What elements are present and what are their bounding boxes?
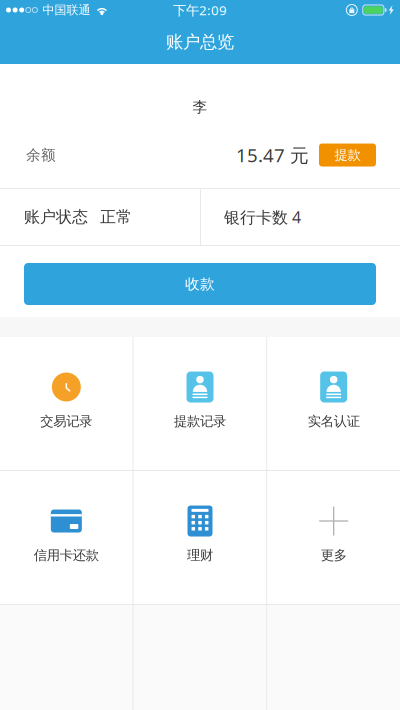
staticText: 下午2:09 bbox=[173, 1, 227, 19]
button[interactable]: 提款记录 bbox=[134, 337, 266, 470]
staticText: 账户总览 bbox=[166, 31, 234, 53]
staticText: 信用卡还款 bbox=[34, 547, 99, 563]
staticText: 更多 bbox=[321, 547, 347, 563]
button[interactable]: 交易记录 bbox=[0, 337, 133, 470]
staticText: 提款记录 bbox=[174, 413, 226, 429]
button[interactable]: 提款 bbox=[319, 143, 376, 166]
staticText: 收款 bbox=[185, 275, 215, 293]
staticText: 提款 bbox=[334, 147, 360, 163]
staticText: 账户状态 bbox=[24, 207, 88, 227]
staticText: 银行卡数 4 bbox=[224, 206, 301, 228]
button[interactable]: 收款 bbox=[24, 263, 376, 305]
staticText: 理财 bbox=[187, 547, 213, 563]
button[interactable]: 实名认证 bbox=[267, 337, 400, 470]
staticText: 中国联通 bbox=[42, 3, 90, 17]
button[interactable]: 更多 bbox=[267, 471, 400, 604]
staticText: 余额 bbox=[26, 146, 56, 164]
staticText: 正常 bbox=[100, 207, 132, 227]
staticText: 15.47 元 bbox=[236, 143, 309, 167]
staticText: 实名认证 bbox=[308, 413, 360, 429]
button[interactable]: 理财 bbox=[134, 471, 266, 604]
staticText: 李 bbox=[192, 98, 207, 116]
button[interactable]: 信用卡还款 bbox=[0, 471, 133, 604]
staticText: 交易记录 bbox=[40, 413, 92, 429]
